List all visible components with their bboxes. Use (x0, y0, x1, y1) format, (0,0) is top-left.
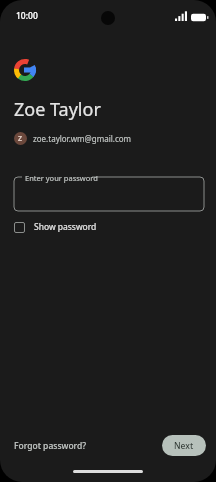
staticText: Next (174, 440, 194, 452)
staticText: Enter your password (25, 173, 98, 183)
staticText: Z (18, 134, 23, 144)
staticText: zoe.taylor.wm@gmail.com (33, 133, 132, 144)
staticText: Zoe Taylor (14, 97, 101, 122)
staticText: Forgot password? (14, 440, 87, 452)
button[interactable]: Show password (14, 219, 97, 235)
button[interactable]: Enter your password (14, 171, 204, 211)
staticText: Show password (34, 221, 97, 233)
other: Home gesture bar (73, 470, 143, 473)
staticText: 10:00 (16, 10, 38, 22)
button[interactable]: Next (162, 435, 206, 456)
button[interactable]: Forgot password? (8, 435, 93, 457)
